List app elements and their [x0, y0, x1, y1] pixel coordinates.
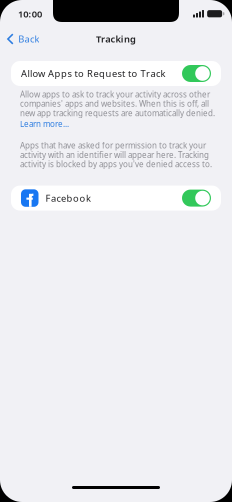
staticText: Allow Apps to Request to Track — [21, 67, 165, 80]
staticText: Facebook — [45, 192, 91, 204]
staticText: 10:00 — [18, 8, 42, 20]
button[interactable]: Facebook — [11, 186, 221, 211]
button[interactable]: Learn more... — [20, 118, 69, 129]
button[interactable]: Back — [0, 29, 47, 49]
staticText: Tracking — [96, 33, 136, 45]
staticText: Back — [18, 33, 39, 45]
staticText: Allow apps to ask to track your activity… — [20, 89, 215, 118]
button[interactable]: Allow Apps to Request to Track — [11, 61, 221, 86]
staticText: Learn more... — [20, 118, 69, 129]
staticText: Apps that have asked for permission to t… — [20, 140, 212, 170]
